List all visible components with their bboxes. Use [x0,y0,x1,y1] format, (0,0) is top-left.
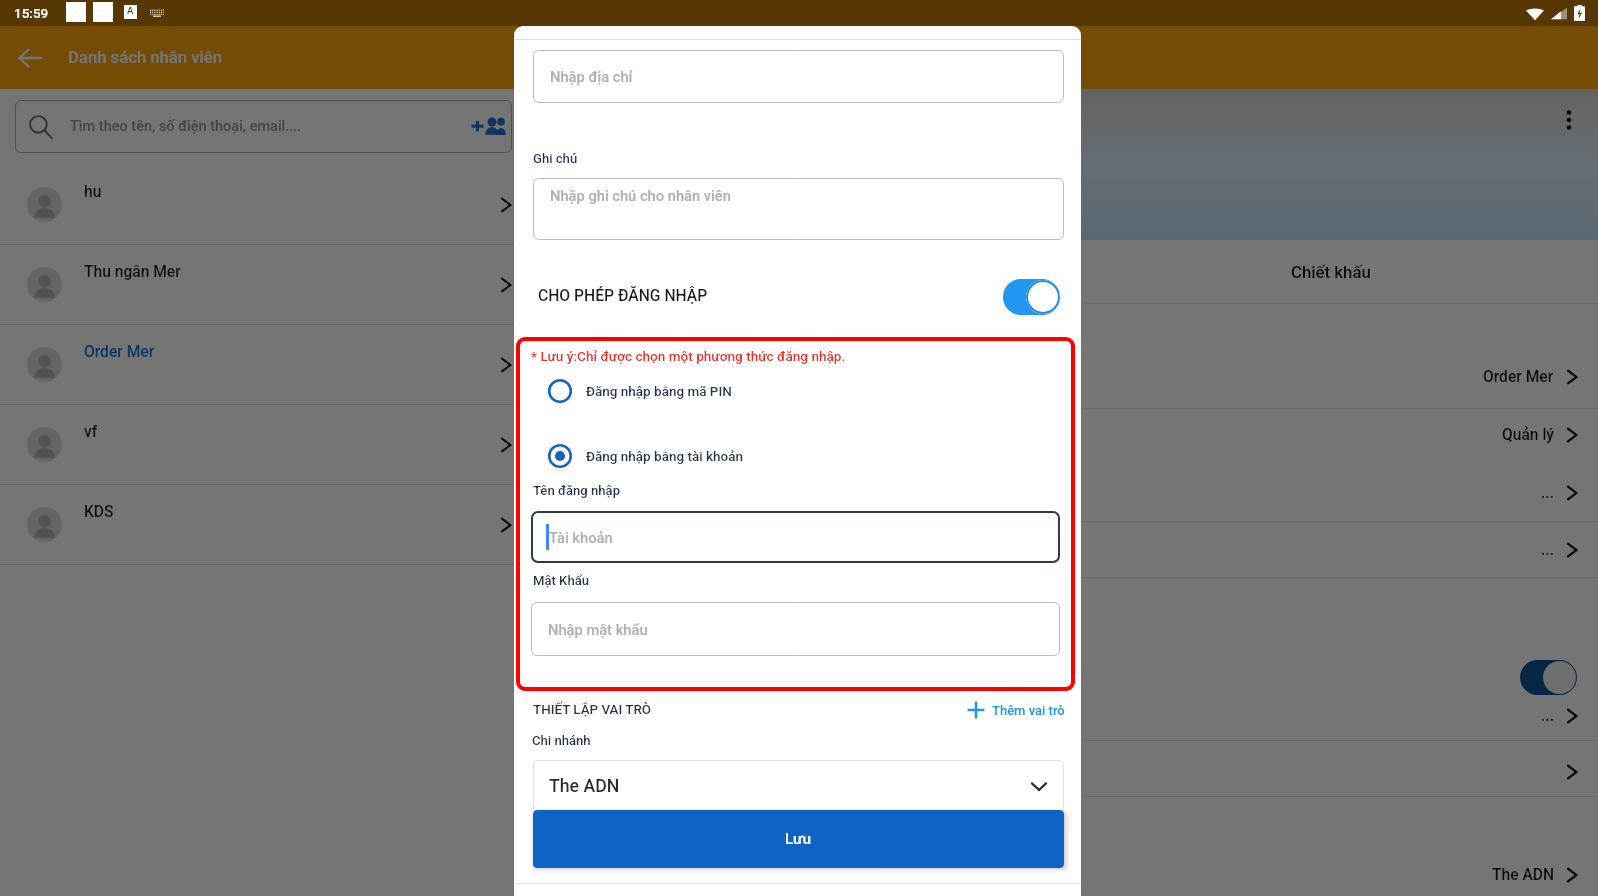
staticText: Chiết khấu [1291,262,1371,282]
button[interactable]: ... [528,476,1598,510]
staticText: Order Mer [84,343,155,361]
staticText: Thu ngân Mer [84,263,181,281]
button[interactable]: Order Mer [0,325,527,404]
staticText: ... [1541,707,1554,725]
button[interactable]: Quản lý [528,418,1598,452]
button[interactable]: Add employee [466,105,510,149]
staticText: Thêm vai trò [992,703,1065,718]
staticText: Order Mer [1483,368,1554,386]
staticText: 15:59 [14,5,49,21]
staticText: Nhập địa chỉ [550,68,633,85]
button[interactable]: Lưu [533,810,1064,868]
staticText: Đăng nhập bằng mã PIN [586,383,732,399]
staticText: Chi nhánh [532,733,591,748]
staticText: Tên đăng nhập [533,483,620,498]
staticText: ... [1541,484,1554,502]
button[interactable]: The ADN [533,760,1064,812]
staticText: The ADN [549,776,620,797]
button[interactable]: Đăng nhập bằng mã PIN [548,377,732,405]
button[interactable]: hu [0,165,527,244]
button[interactable]: Order Mer [528,360,1598,394]
button[interactable]: Nhập mật khẩu [531,602,1060,656]
staticText: The ADN [1492,866,1554,884]
staticText: Mật Khẩu [533,573,590,588]
staticText: Nhập mật khẩu [548,621,648,638]
button[interactable] [528,647,1598,707]
button[interactable]: ... [528,699,1598,733]
staticText: Tìm theo tên, số điện thoại, email.... [70,118,302,135]
button[interactable]: ... [528,533,1598,567]
staticText: Tài khoản [549,529,613,546]
button[interactable]: Thu ngân Mer [0,245,527,324]
button[interactable]: CHO PHÉP ĐĂNG NHẬP [538,266,1060,320]
button[interactable]: Chiết khấu [528,240,1598,303]
button[interactable]: More options [1550,101,1588,139]
button[interactable]: The ADN [528,858,1598,892]
staticText: Đăng nhập bằng tài khoản [586,448,743,464]
button[interactable] [528,755,1598,789]
staticText: hu [84,183,102,201]
button[interactable]: Tìm theo tên, số điện thoại, email.... [15,100,512,153]
staticText: KDS [84,503,114,521]
staticText: vf [84,423,98,441]
staticText: ... [1541,541,1554,559]
staticText: THIẾT LẬP VAI TRÒ [533,702,652,718]
button[interactable]: Tài khoản [531,511,1060,563]
button[interactable]: Thêm vai trò [966,700,1065,720]
staticText: A [127,5,134,16]
button[interactable]: KDS [0,485,527,564]
button[interactable]: Nhập địa chỉ [533,50,1064,103]
staticText: CHO PHÉP ĐĂNG NHẬP [538,286,708,304]
staticText: Nhập ghi chú cho nhân viên [550,187,731,204]
staticText: MER [542,199,586,224]
button[interactable]: Nhập ghi chú cho nhân viên [533,178,1064,240]
staticText: Lưu [785,830,812,848]
staticText: * Lưu ý:Chỉ được chọn một phương thức đă… [531,348,846,364]
button[interactable]: vf [0,405,527,484]
staticText: Ghi chú [533,151,578,166]
button[interactable]: Back [8,36,52,80]
staticText: Quản lý [1502,426,1554,444]
button[interactable]: Đăng nhập bằng tài khoản [548,442,743,470]
staticText: Danh sách nhân viên [68,48,223,68]
